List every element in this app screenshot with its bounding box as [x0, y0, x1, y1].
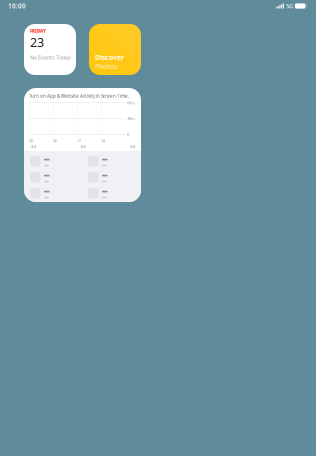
button[interactable]: FRIDAY — [24, 24, 76, 75]
staticText: 23 — [30, 34, 44, 50]
staticText: 06 — [53, 138, 57, 143]
staticText: Photos — [95, 62, 117, 71]
staticText: 00 — [29, 138, 33, 143]
staticText: 0 — [127, 131, 129, 137]
button[interactable]: Turn on App & Website Activity in Screen… — [24, 88, 141, 202]
staticText: 18 — [101, 138, 105, 143]
staticText: 60m — [127, 100, 135, 105]
staticText: 30m — [127, 116, 135, 121]
button[interactable]: Discover — [89, 24, 141, 75]
staticText: 10:00 — [8, 2, 26, 10]
staticText: No Events Today — [30, 54, 71, 61]
staticText: FRIDAY — [30, 28, 46, 34]
staticText: 5G — [286, 2, 293, 10]
staticText: 12 — [77, 138, 81, 143]
staticText: Turn on App & Website Activity in Screen… — [29, 93, 129, 99]
staticText: Discover — [95, 53, 124, 62]
